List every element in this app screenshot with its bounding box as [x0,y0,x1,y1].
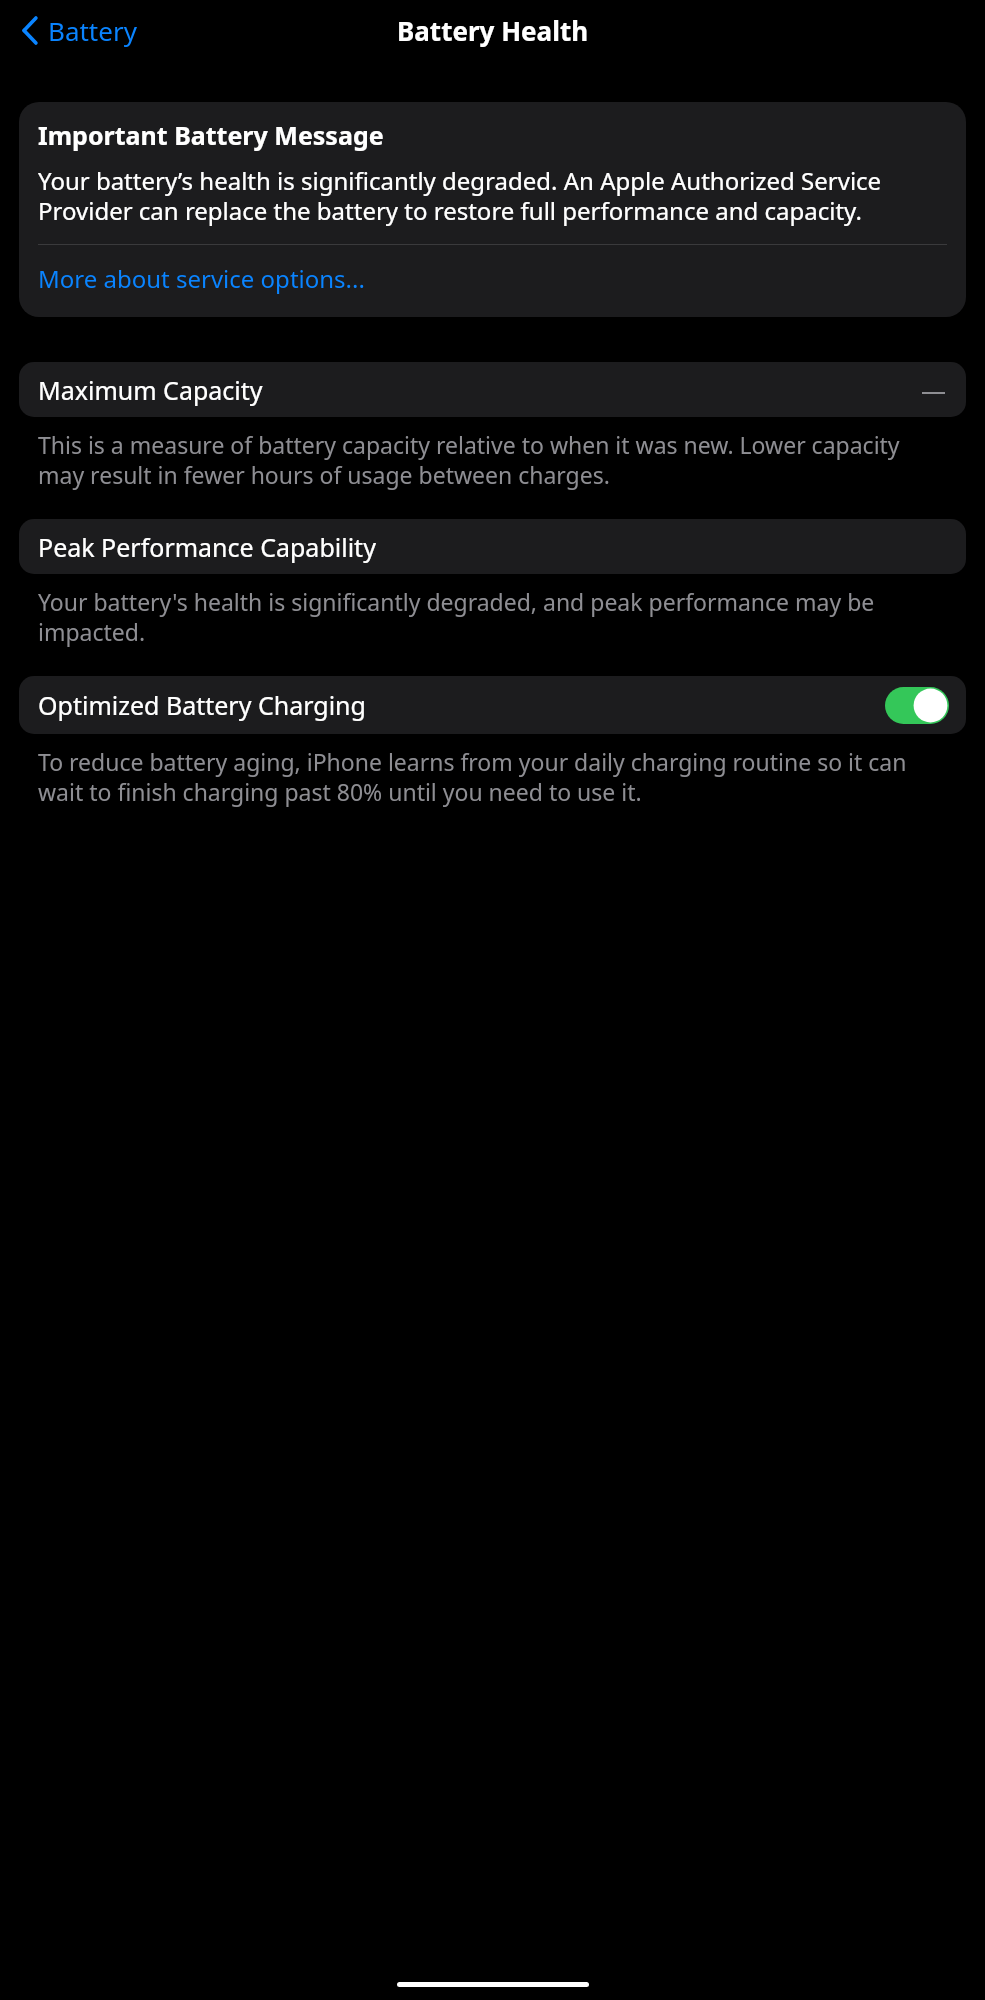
button[interactable]: More about service options... [19,245,966,317]
staticText: Battery [48,13,137,48]
staticText: Important Battery Message [38,118,384,152]
staticText: Your battery's health is significantly d… [38,586,947,648]
staticText: Maximum Capacity [38,373,921,407]
staticText: Battery Health [397,13,589,48]
staticText: Your battery’s health is significantly d… [38,164,947,227]
staticText: Peak Performance Capability [38,530,376,564]
button[interactable]: Maximum Capacity [19,362,966,417]
staticText: Optimized Battery Charging [38,688,885,722]
staticText: — [921,373,947,407]
button[interactable]: Optimized Battery Charging [19,676,966,734]
staticText: To reduce battery aging, iPhone learns f… [38,746,947,808]
button[interactable]: Peak Performance Capability [19,519,966,574]
staticText: This is a measure of battery capacity re… [38,429,947,491]
button[interactable]: Battery [18,9,141,52]
button[interactable]: Optimized Battery Charging toggle [885,687,949,724]
staticText: More about service options... [38,262,365,295]
